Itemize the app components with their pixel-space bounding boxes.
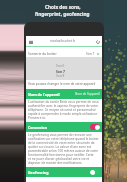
staticText: Choix des sons, — [45, 4, 81, 10]
staticText: Nom de l'appareil — [75, 92, 100, 96]
staticText: Son 7 — [86, 52, 95, 56]
button[interactable]: Sonnerie du boitier — [28, 50, 100, 57]
staticText: disposer de manier des notifications. — [28, 161, 83, 165]
button[interactable]: Nom de l'appareil — [26, 89, 102, 99]
staticText: fingerprint, geofencing — [35, 11, 90, 17]
staticText: L'utilisation du tactile Brisk vous perm… — [28, 100, 99, 104]
staticText: téléphone. Ce moyen sécurisé et personna… — [28, 108, 100, 112]
staticText: Son 6 — [56, 64, 65, 68]
staticText: rapide à comprendre à mode simple utilis… — [28, 112, 98, 116]
staticText: Presence ici. — [28, 116, 47, 120]
staticText: de la connectivité de votre entre sécuri… — [28, 141, 95, 145]
button[interactable]: Son 6 — [26, 57, 102, 80]
staticText: Son 8 — [56, 74, 65, 78]
staticText: quitter ou s'ouvre. La valeur d'une zone… — [28, 145, 92, 149]
staticText: authentifier avec le capteur fingerprint… — [28, 104, 99, 108]
staticText: Nom de l'appareil — [28, 92, 60, 97]
button[interactable]: Menu — [28, 39, 33, 44]
staticText: notification sur votre téléphone quand l… — [28, 137, 99, 141]
staticText: fonctionnalité fonctionne pour notifier.… — [28, 153, 94, 157]
button[interactable]: Toggle Geofencing — [90, 169, 100, 175]
staticText: nicolasfouchet.fr — [50, 39, 76, 43]
button[interactable]: Geofencing — [26, 167, 102, 177]
staticText: Connexion — [28, 125, 48, 130]
staticText: Le geofencing vous permet de recevoir un… — [28, 133, 92, 137]
staticText: Vous pouvez changer le nom de votre appa… — [28, 82, 96, 86]
staticText: Geofencing — [28, 170, 49, 175]
staticText: Sonnerie du boitier — [28, 52, 57, 56]
staticText: et ne jouer d'avoir géolocalisé votre vi… — [28, 157, 90, 161]
staticText: paramétrable selon 100 mètres autour de … — [28, 149, 98, 153]
button[interactable]: Toggle Connexion — [90, 124, 100, 130]
staticText: Son 7 — [56, 69, 65, 73]
button[interactable]: Reload — [94, 38, 101, 45]
button[interactable]: Connexion — [26, 122, 102, 132]
